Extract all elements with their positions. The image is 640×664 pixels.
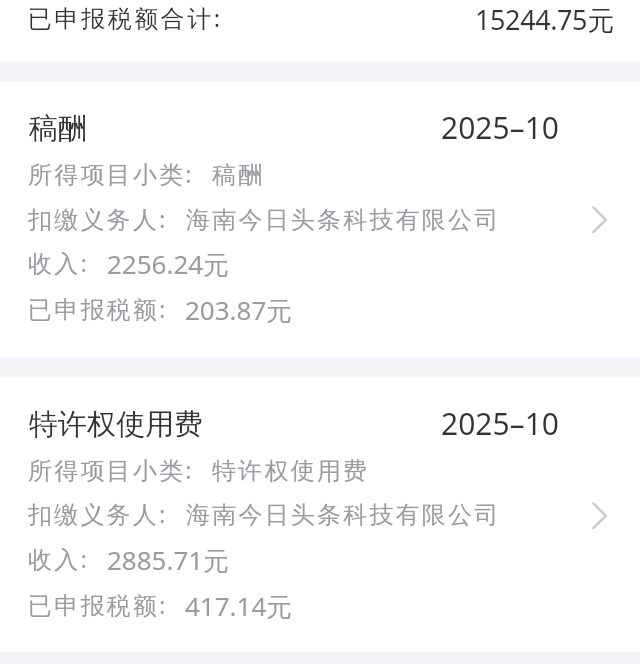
staticText: 海南今日头条科技有限公司 — [186, 500, 501, 530]
other: 查看申报明细 — [570, 195, 626, 251]
staticText: 扣缴义务人: — [28, 497, 168, 530]
staticText: 扣缴义务人: — [28, 202, 168, 235]
staticText: 海南今日头条科技有限公司 — [186, 205, 501, 235]
staticText: 所得项目小类: — [28, 453, 194, 486]
staticText: 203.87元 — [185, 292, 293, 328]
staticText: 2256.24元 — [107, 246, 230, 282]
staticText: 特许权使用费 — [29, 406, 203, 443]
staticText: 所得项目小类: — [28, 157, 194, 190]
staticText: 已申报税额: — [28, 292, 168, 325]
staticText: 2025–10 — [441, 403, 559, 444]
staticText: 已申报税额: — [28, 588, 168, 621]
staticText: 稿酬 — [212, 160, 265, 190]
other: 查看申报明细 — [570, 491, 626, 547]
staticText: 15244.75元 — [475, 1, 614, 38]
button[interactable]: 特许权使用费 — [0, 377, 640, 652]
staticText: 特许权使用费 — [212, 456, 370, 486]
staticText: 收入: — [28, 542, 90, 575]
staticText: 2885.71元 — [107, 542, 230, 578]
button[interactable]: 稿酬 — [0, 82, 640, 357]
staticText: 已申报税额合计: — [28, 1, 223, 34]
staticText: 收入: — [28, 246, 90, 279]
staticText: 稿酬 — [29, 110, 87, 147]
staticText: 2025–10 — [441, 107, 559, 148]
staticText: 417.14元 — [185, 588, 293, 624]
